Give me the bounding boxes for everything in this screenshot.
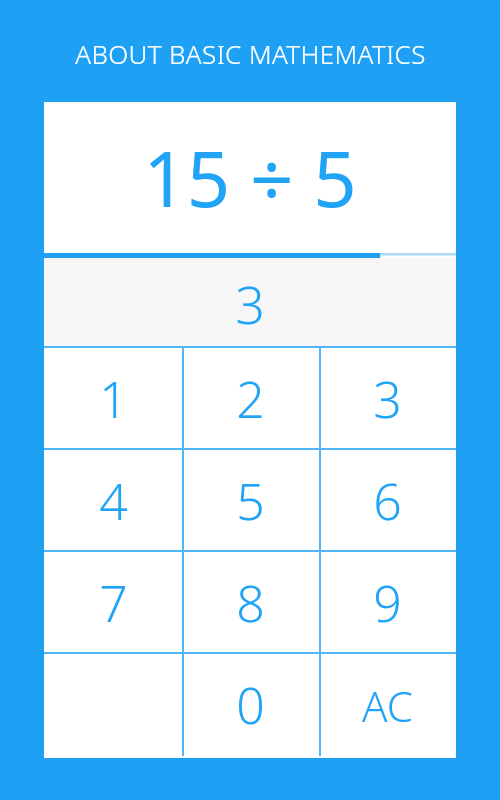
staticText: 15 ÷ 5 <box>143 126 357 230</box>
button[interactable]: 7 <box>44 552 182 654</box>
staticText: 3 <box>373 365 402 433</box>
button[interactable]: 6 <box>319 450 456 552</box>
staticText: ABOUT BASIC MATHEMATICS <box>75 36 426 71</box>
staticText: 4 <box>99 467 128 535</box>
button[interactable]: 3 <box>44 258 456 348</box>
button[interactable]: 9 <box>319 552 456 654</box>
staticText: 8 <box>236 569 265 637</box>
button[interactable]: 3 <box>319 348 456 450</box>
button[interactable]: AC <box>319 654 456 756</box>
staticText: 2 <box>236 365 265 433</box>
staticText: 7 <box>99 569 128 637</box>
staticText: 9 <box>373 569 402 637</box>
button[interactable]: 2 <box>182 348 319 450</box>
button[interactable]: 0 <box>182 654 319 756</box>
button[interactable]: 5 <box>182 450 319 552</box>
button[interactable]: 1 <box>44 348 182 450</box>
staticText: 1 <box>99 365 128 433</box>
staticText: 5 <box>236 467 265 535</box>
button[interactable]: 4 <box>44 450 182 552</box>
staticText: AC <box>362 677 413 734</box>
button[interactable]: 8 <box>182 552 319 654</box>
staticText: 3 <box>235 268 265 339</box>
staticText: 6 <box>373 467 402 535</box>
staticText: 0 <box>236 671 265 739</box>
